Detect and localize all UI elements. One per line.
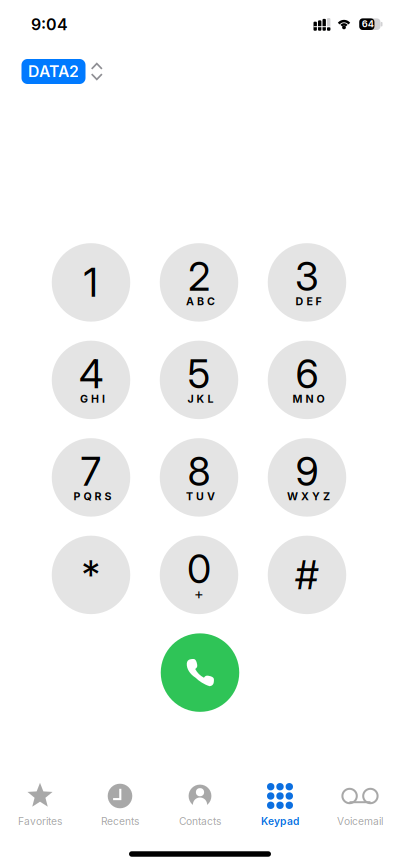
staticText: # — [295, 551, 319, 599]
staticText: Contacts — [179, 815, 221, 827]
staticText: JKL — [187, 392, 213, 405]
staticText: 1 — [83, 259, 98, 306]
staticText: GHI — [80, 392, 105, 405]
button[interactable]: 8 — [160, 438, 238, 517]
staticText: Favorites — [18, 815, 62, 827]
staticText: Keypad — [261, 815, 299, 827]
staticText: 4 — [79, 350, 103, 398]
button[interactable]: 0 — [160, 536, 238, 614]
button[interactable]: # — [268, 536, 346, 614]
button[interactable]: Call — [161, 633, 239, 712]
staticText: Voicemail — [337, 815, 383, 827]
staticText: PQRS — [73, 490, 111, 503]
staticText: 8 — [187, 448, 210, 495]
button[interactable]: Recents — [80, 774, 160, 830]
staticText: 3 — [295, 253, 319, 300]
button[interactable]: Keypad — [240, 774, 320, 830]
button[interactable]: 2 — [160, 243, 238, 322]
staticText: DATA2 — [28, 62, 79, 81]
staticText: 9 — [295, 448, 318, 495]
staticText: + — [194, 585, 204, 603]
button[interactable]: DATA2 — [21, 59, 107, 83]
button[interactable]: 9 — [268, 438, 346, 517]
staticText: DEF — [295, 295, 321, 308]
staticText: Recents — [101, 815, 139, 827]
staticText: 6 — [295, 350, 318, 398]
staticText: * — [81, 551, 100, 599]
button[interactable]: 5 — [160, 341, 238, 419]
staticText: 64 — [362, 18, 374, 29]
staticText: ABC — [186, 295, 215, 308]
staticText: 9:04 — [31, 15, 68, 34]
button[interactable]: Contacts — [160, 774, 240, 830]
button[interactable]: 1 — [52, 243, 130, 322]
button[interactable]: 4 — [52, 341, 130, 419]
staticText: WXYZ — [287, 490, 330, 503]
button[interactable]: Favorites — [0, 774, 80, 830]
staticText: 7 — [80, 448, 101, 495]
staticText: TUV — [186, 490, 215, 503]
button[interactable]: Voicemail — [320, 774, 400, 830]
staticText: 2 — [188, 253, 210, 300]
staticText: 5 — [187, 350, 210, 398]
staticText: MNO — [292, 392, 324, 405]
button[interactable]: * — [52, 536, 130, 614]
button[interactable]: 7 — [52, 438, 130, 517]
staticText: 0 — [187, 545, 211, 593]
button[interactable]: 6 — [268, 341, 346, 419]
button[interactable]: 3 — [268, 243, 346, 322]
